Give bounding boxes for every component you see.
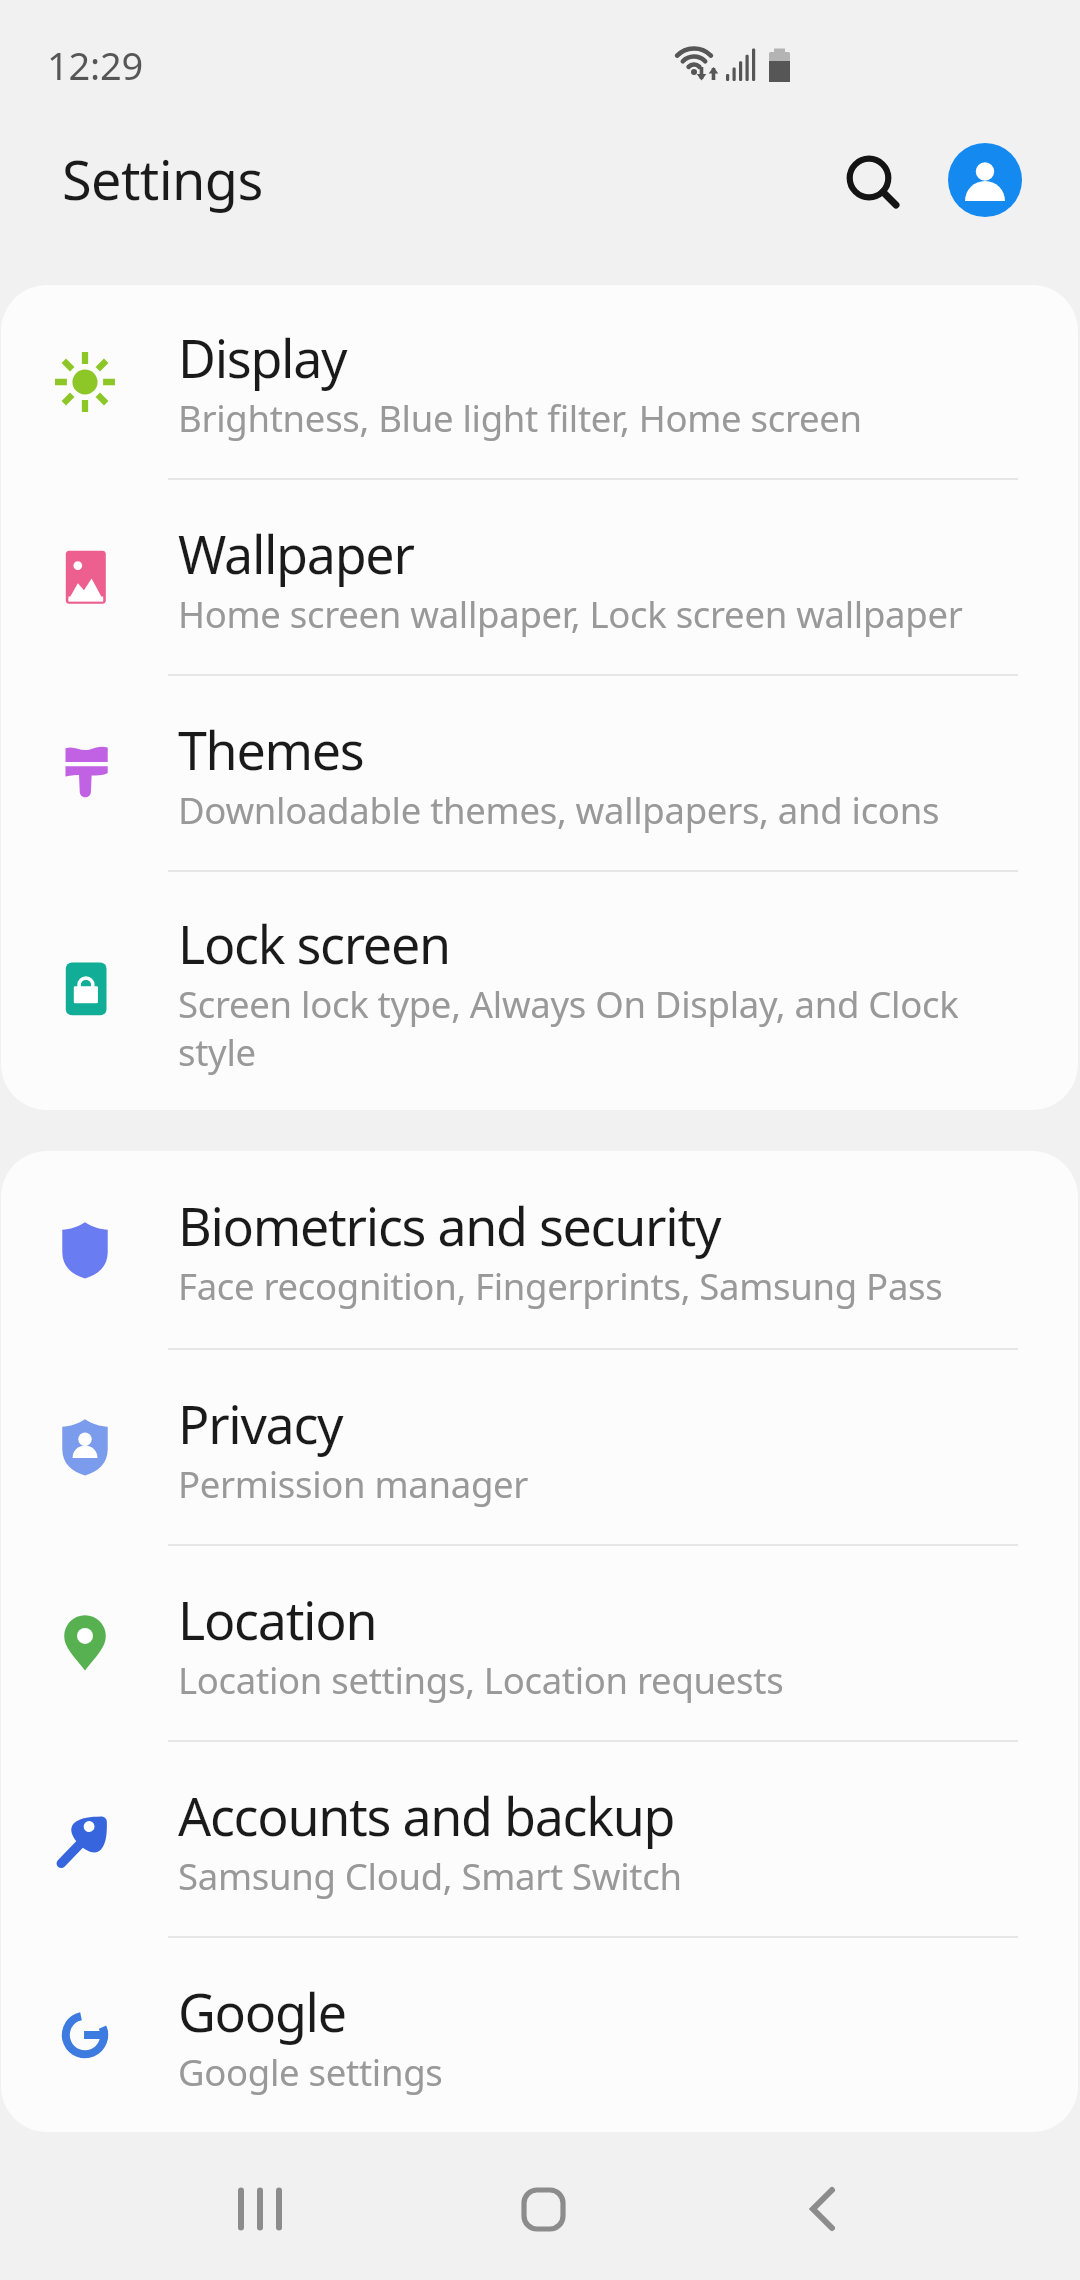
staticText: Permission manager: [178, 1459, 529, 1509]
staticText: Screen lock type, Always On Display, and…: [178, 979, 978, 1076]
staticText: Samsung Cloud, Smart Switch: [178, 1851, 682, 1901]
staticText: Home screen wallpaper, Lock screen wallp…: [178, 589, 963, 639]
staticText: Downloadable themes, wallpapers, and ico…: [178, 785, 940, 835]
button[interactable]: Location: [1, 1546, 1078, 1740]
staticText: Location: [178, 1584, 377, 1655]
staticText: Lock screen: [178, 908, 450, 979]
staticText: Accounts and backup: [178, 1780, 675, 1851]
button[interactable]: Wallpaper: [1, 480, 1078, 674]
staticText: Google settings: [178, 2047, 443, 2097]
staticText: Wallpaper: [178, 518, 414, 589]
button[interactable]: Recents: [200, 2149, 320, 2269]
button[interactable]: Lock screen: [1, 872, 1078, 1110]
staticText: 12:29: [47, 39, 144, 91]
staticText: Settings: [62, 142, 263, 216]
button[interactable]: Account: [948, 143, 1022, 217]
staticText: Location settings, Location requests: [178, 1655, 784, 1705]
staticText: Biometrics and security: [178, 1190, 721, 1261]
button[interactable]: Themes: [1, 676, 1078, 870]
staticText: Brightness, Blue light filter, Home scre…: [178, 393, 862, 443]
button[interactable]: Display: [1, 285, 1078, 478]
button[interactable]: Google: [1, 1938, 1078, 2132]
staticText: Themes: [178, 714, 364, 785]
button[interactable]: Home: [482, 2149, 602, 2269]
button[interactable]: Search: [824, 134, 924, 234]
button[interactable]: Privacy: [1, 1350, 1078, 1544]
button[interactable]: Accounts and backup: [1, 1742, 1078, 1936]
button[interactable]: Back: [767, 2149, 887, 2269]
staticText: Google: [178, 1976, 346, 2047]
staticText: Display: [178, 322, 347, 393]
staticText: Privacy: [178, 1388, 343, 1459]
staticText: Face recognition, Fingerprints, Samsung …: [178, 1261, 943, 1311]
button[interactable]: Biometrics and security: [1, 1151, 1078, 1348]
